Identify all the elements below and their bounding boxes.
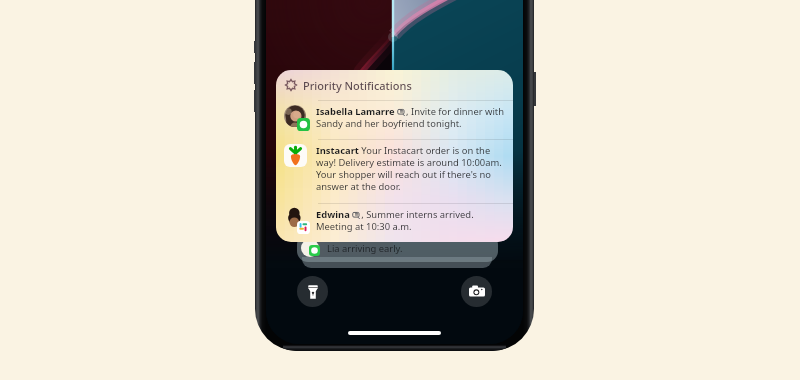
button[interactable]: Isabella Lamarre ✉, Invite for dinner wi… (284, 105, 509, 139)
button[interactable]: Lia arriving early. (297, 234, 498, 262)
button[interactable]: Instacart Your Instacart order is on the… (284, 144, 509, 203)
staticText: Instacart Your Instacart order is on the… (316, 144, 509, 193)
staticText: Lia arriving early. (327, 242, 403, 255)
button[interactable]: Camera (461, 276, 492, 307)
button[interactable]: Priority Notifications (285, 70, 513, 100)
staticText: Edwina ✉, Summer interns arrived. Meetin… (316, 208, 509, 233)
staticText: Isabella Lamarre ✉, Invite for dinner wi… (316, 105, 509, 130)
button[interactable]: Flashlight (297, 276, 328, 307)
button[interactable]: Edwina ✉, Summer interns arrived. Meetin… (284, 208, 509, 242)
staticText: Priority Notifications (303, 78, 412, 93)
